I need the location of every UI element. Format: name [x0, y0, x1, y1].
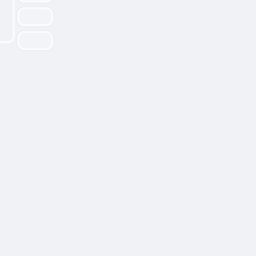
button[interactable]: Row — [18, 32, 52, 49]
button[interactable]: Row — [18, 0, 52, 2]
